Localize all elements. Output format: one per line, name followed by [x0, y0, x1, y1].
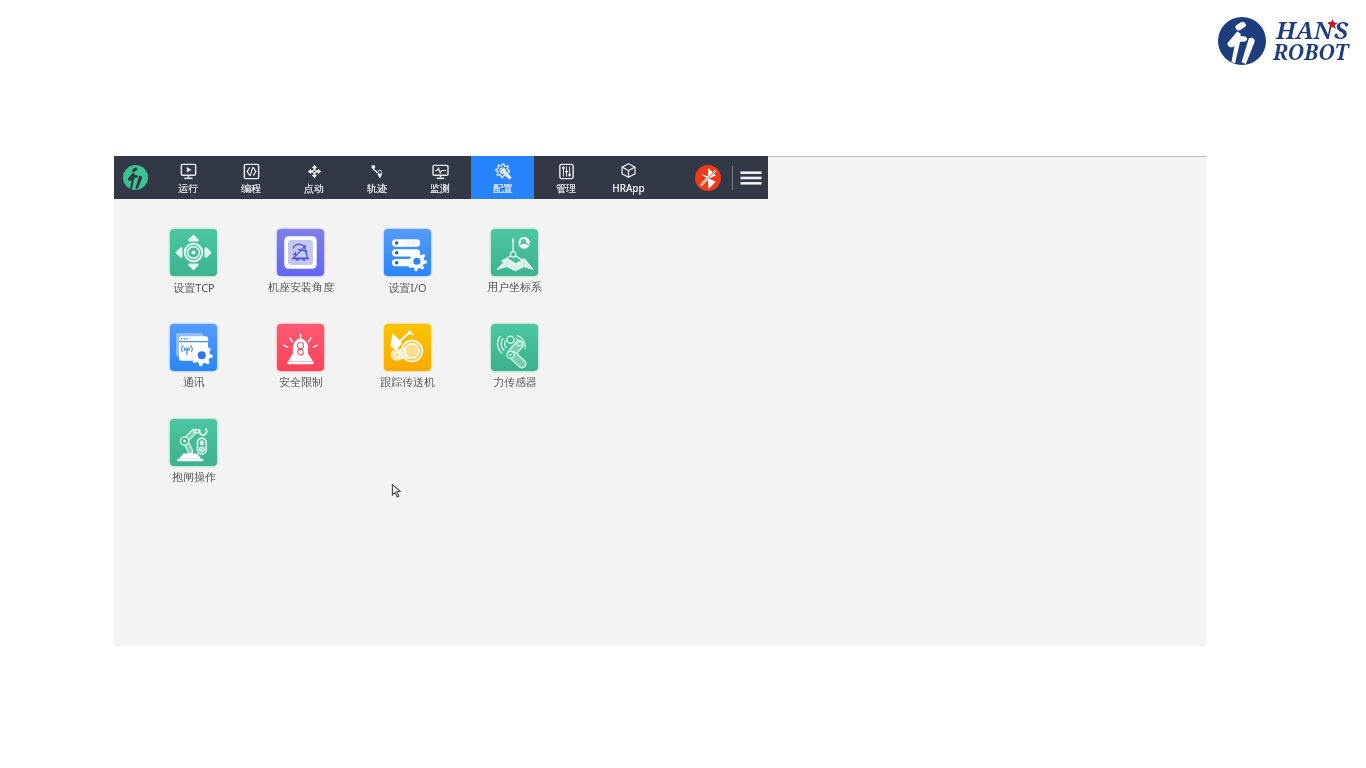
button[interactable]: 用户坐标系: [465, 227, 564, 294]
button[interactable]: 监测: [408, 156, 471, 199]
staticText: 设置TCP: [173, 280, 215, 295]
button[interactable]: HRApp: [597, 156, 660, 199]
staticText: 安全限制: [279, 375, 323, 389]
staticText: HAN: [1276, 13, 1333, 46]
button[interactable]: 轨迹: [345, 156, 408, 199]
button[interactable]: 运行: [156, 156, 219, 199]
button[interactable]: 点动: [282, 156, 345, 199]
button[interactable]: 通讯: [144, 322, 243, 389]
button[interactable]: 设置TCP: [144, 227, 243, 295]
staticText: 点动: [304, 182, 324, 195]
button[interactable]: 配置: [471, 156, 534, 199]
button[interactable]: 力传感器: [465, 322, 564, 389]
staticText: 管理: [556, 182, 576, 195]
button[interactable]: Menu: [733, 156, 768, 199]
button[interactable]: 抱闸操作: [144, 417, 243, 484]
staticText: 抱闸操作: [172, 470, 216, 484]
staticText: 通讯: [183, 375, 205, 389]
staticText: 监测: [430, 182, 450, 195]
button[interactable]: 安全限制: [251, 322, 350, 389]
staticText: 编程: [241, 182, 261, 195]
staticText: ROBOT: [1273, 38, 1349, 67]
staticText: 设置I/O: [388, 280, 427, 295]
staticText: 轨迹: [367, 182, 387, 195]
staticText: 用户坐标系: [487, 280, 542, 294]
staticText: HRApp: [612, 181, 645, 195]
button[interactable]: Han's Robot home: [114, 156, 156, 199]
staticText: 机座安装角度: [268, 280, 334, 294]
staticText: 跟踪传送机: [380, 375, 435, 389]
button[interactable]: 管理: [534, 156, 597, 199]
button[interactable]: 编程: [219, 156, 282, 199]
staticText: 力传感器: [493, 375, 537, 389]
button[interactable]: 机座安装角度: [251, 227, 350, 294]
staticText: 运行: [178, 182, 198, 195]
button[interactable]: 设置I/O: [358, 227, 457, 295]
staticText: S: [1334, 13, 1349, 46]
button[interactable]: Bluetooth disabled: [691, 156, 724, 199]
button[interactable]: 跟踪传送机: [358, 322, 457, 389]
staticText: 配置: [493, 182, 513, 195]
